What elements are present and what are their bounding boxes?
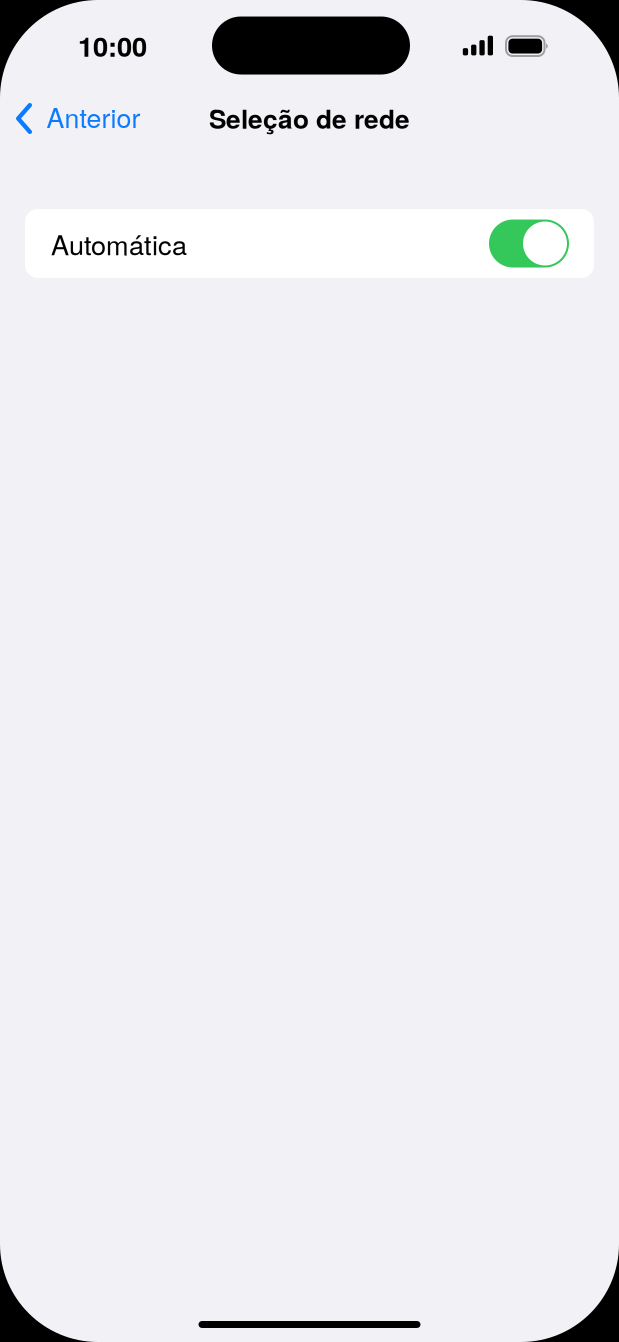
staticText: Anterior <box>46 97 140 136</box>
button[interactable]: Anterior <box>0 92 150 144</box>
staticText: Automática <box>51 224 187 263</box>
staticText: Seleção de rede <box>209 99 410 137</box>
button[interactable]: Automática <box>25 209 594 278</box>
staticText: 10:00 <box>78 26 147 65</box>
